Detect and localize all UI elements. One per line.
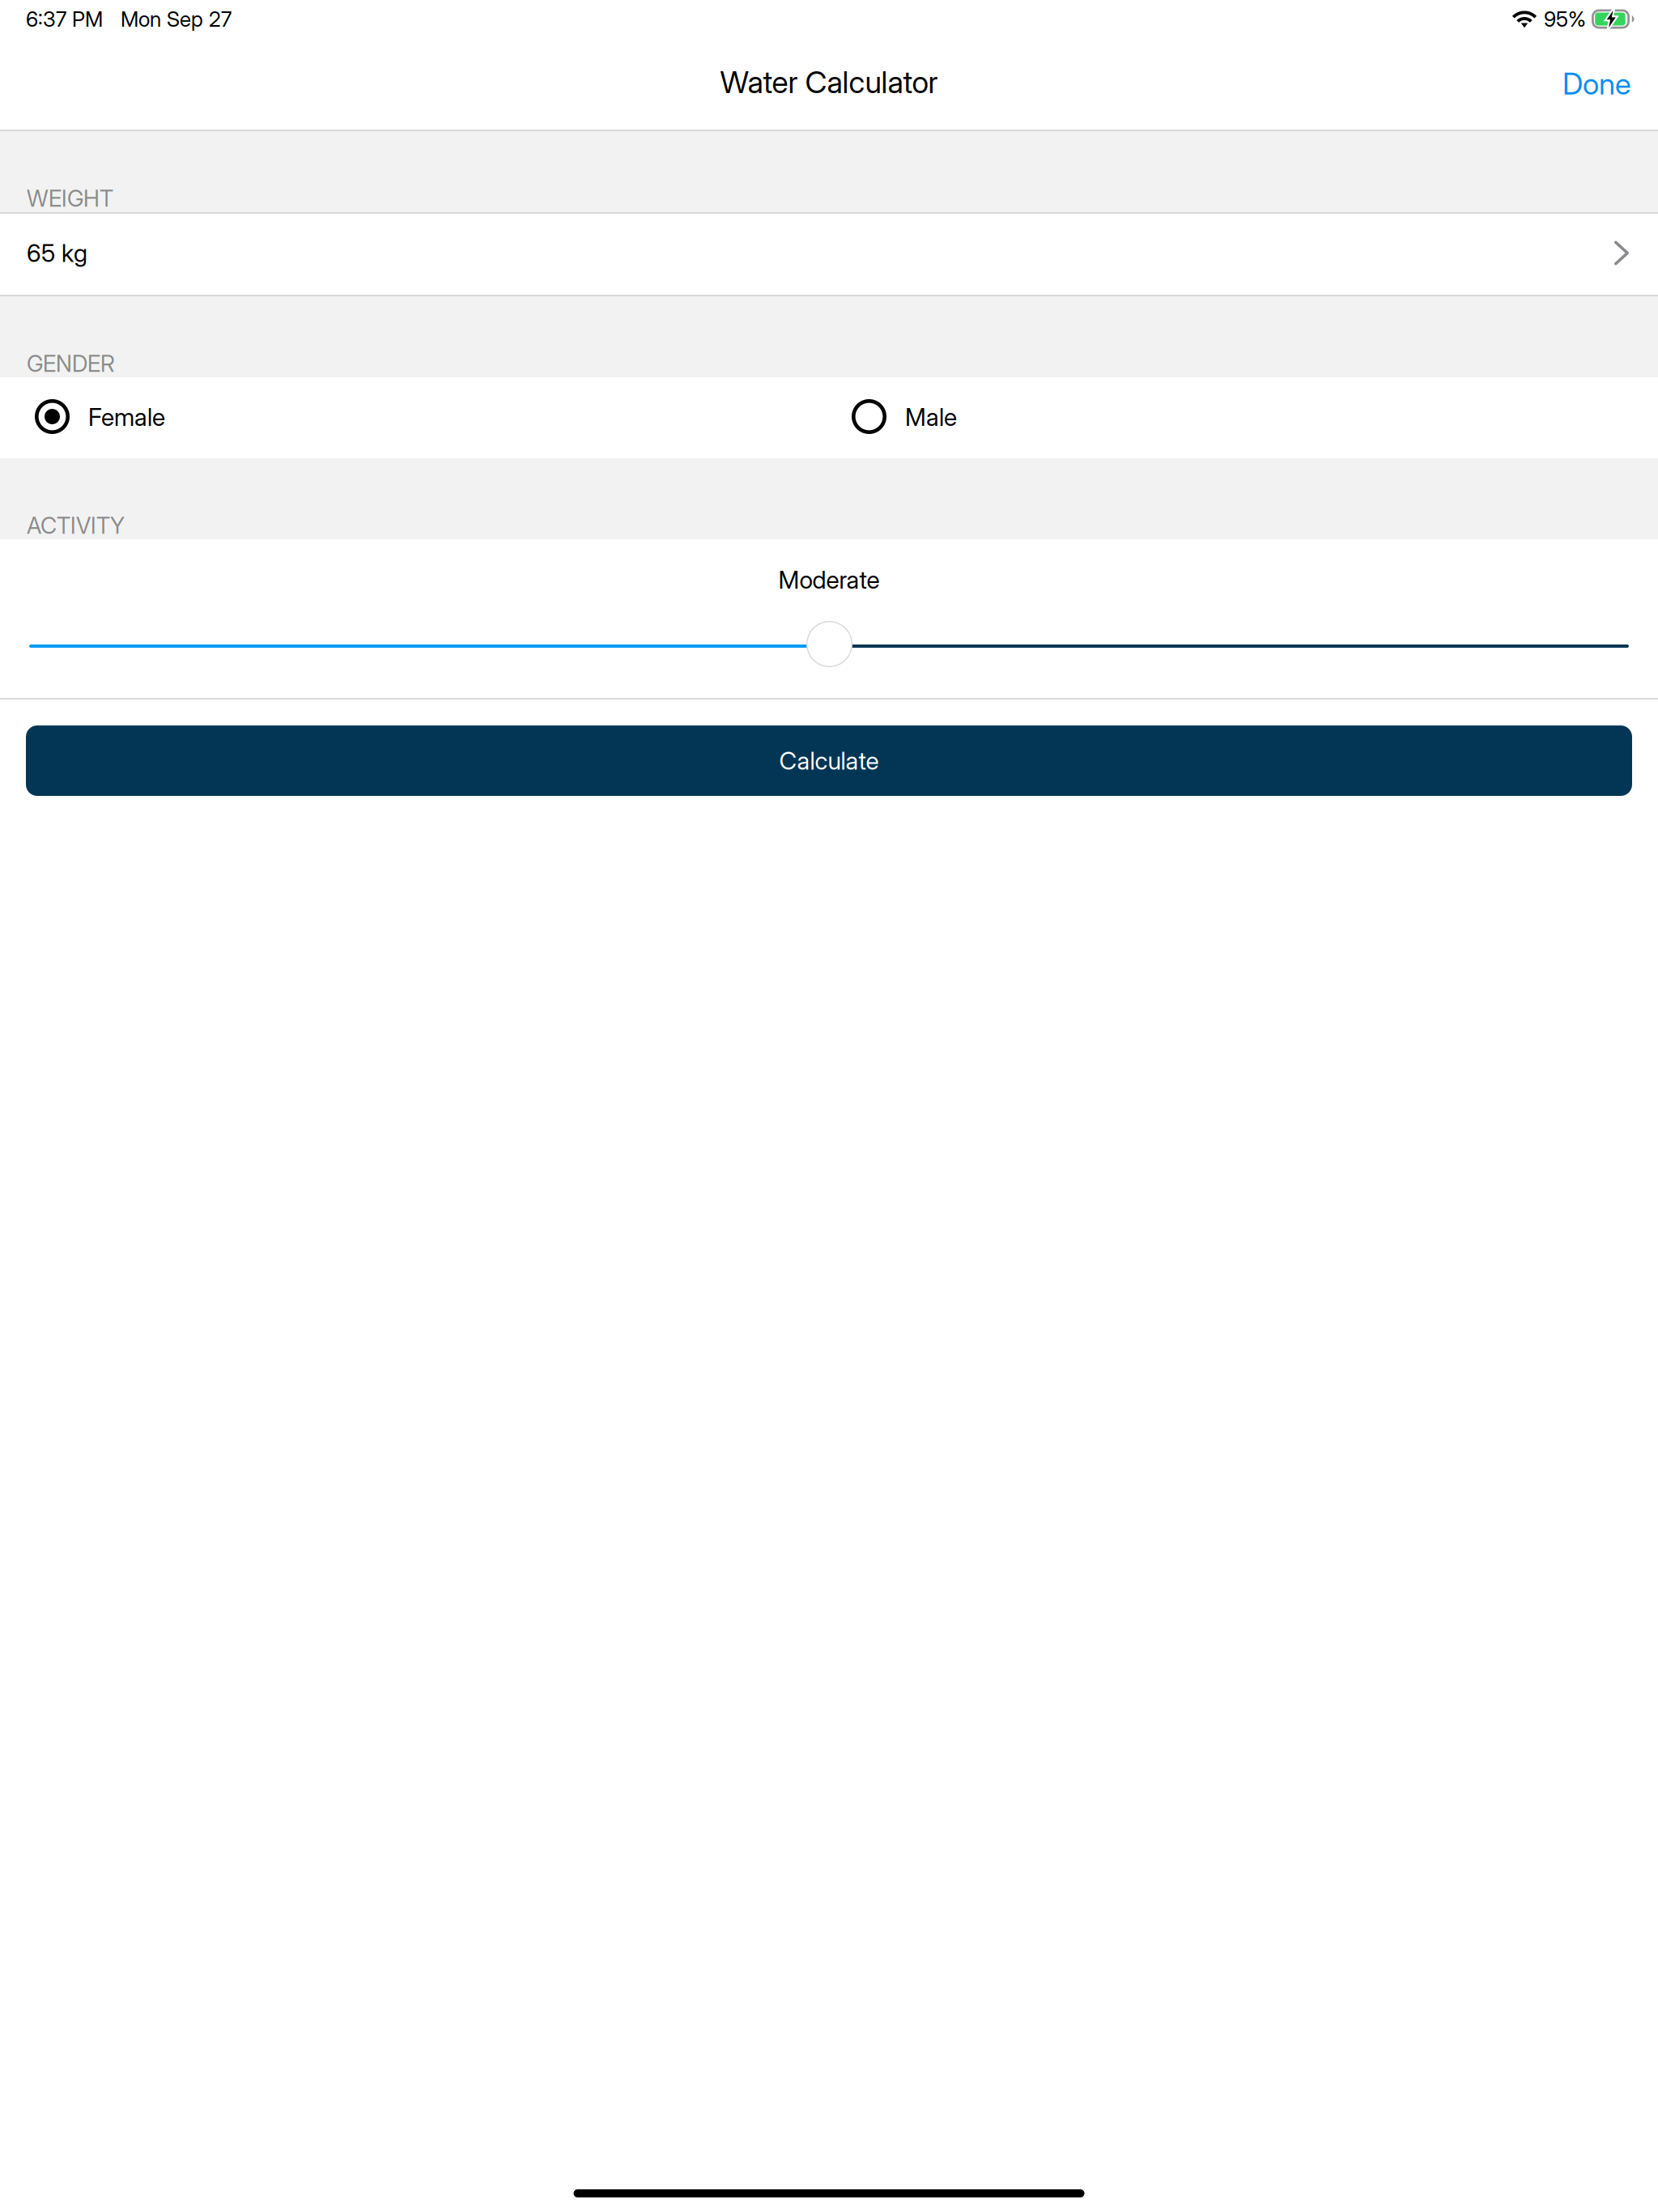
button[interactable]: Calculate — [26, 725, 1632, 796]
staticText: Male — [905, 402, 957, 432]
button[interactable]: 65 kg — [0, 214, 1658, 295]
staticText: Mon Sep 27 — [121, 6, 232, 32]
staticText: Female — [88, 402, 165, 432]
staticText: GENDER — [27, 350, 115, 377]
button[interactable]: Done — [1551, 51, 1643, 116]
staticText: Done — [1562, 66, 1631, 102]
staticText: 6:37 PM — [26, 6, 103, 32]
button[interactable]: Male — [0, 377, 976, 458]
staticText: 65 kg — [27, 238, 87, 268]
staticText: WEIGHT — [27, 185, 113, 212]
staticText: 95% — [1544, 6, 1586, 32]
staticText: ACTIVITY — [27, 512, 125, 539]
button[interactable]: Female — [0, 377, 185, 458]
staticText: Water Calculator — [720, 64, 938, 100]
staticText: Moderate — [778, 565, 880, 595]
staticText: Calculate — [779, 746, 879, 775]
